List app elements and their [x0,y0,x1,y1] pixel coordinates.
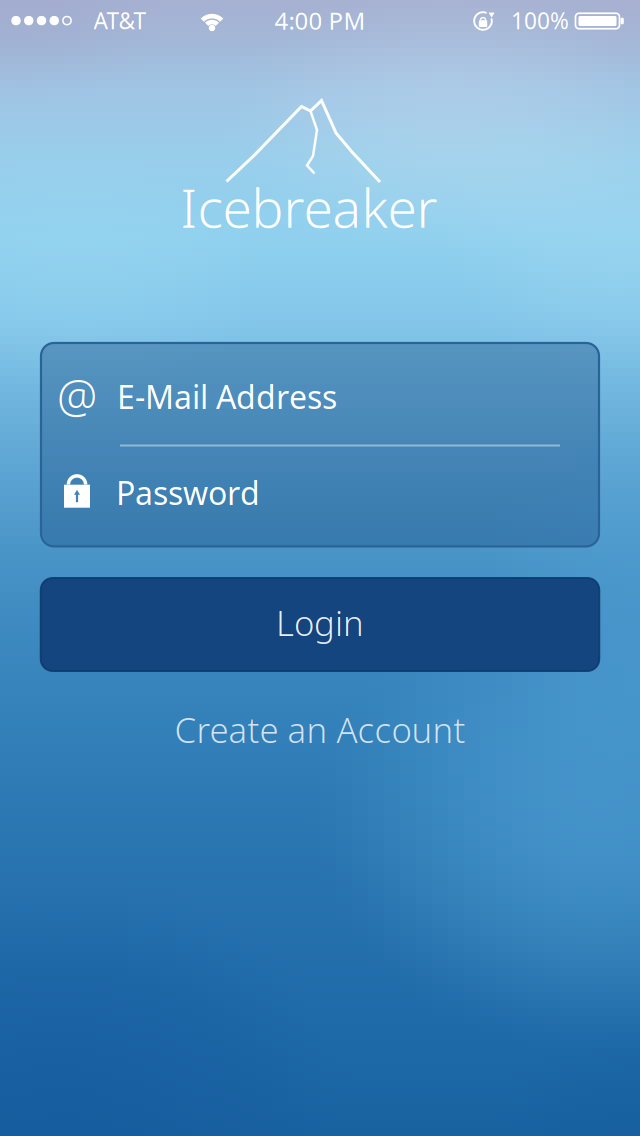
staticText: Login [276,599,364,645]
staticText: 4:00 PM [274,5,365,36]
staticText: 100% [511,5,569,35]
staticText: Password [116,471,260,514]
staticText: E-Mail Address [117,375,337,418]
button[interactable]: Create an Account [174,706,465,752]
staticText: Icebreaker [180,172,437,242]
button[interactable]: Login [41,578,599,671]
staticText: Create an Account [174,706,465,752]
button[interactable]: Password [41,443,599,542]
staticText: @ [57,365,97,426]
button[interactable]: E-Mail Address [41,346,599,446]
staticText: AT&T [93,5,146,35]
